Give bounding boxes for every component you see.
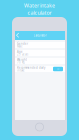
staticText: Male xyxy=(17,45,23,48)
staticText: intake xyxy=(17,69,25,72)
button[interactable]: Back xyxy=(15,31,21,40)
button[interactable]: Age xyxy=(15,50,65,56)
staticText: calculator xyxy=(27,9,51,16)
staticText: Calculator xyxy=(33,34,46,37)
staticText: Age xyxy=(17,50,23,53)
staticText: Recommended daily xyxy=(17,66,45,69)
button[interactable]: Gender xyxy=(15,42,65,48)
staticText: Water intake xyxy=(24,2,55,9)
button[interactable]: Recommended daily xyxy=(15,66,65,72)
staticText: 70 kg xyxy=(17,61,25,64)
button[interactable]: Calc xyxy=(53,67,63,71)
staticText: 25 years xyxy=(17,53,28,56)
staticText: Weight xyxy=(17,58,27,61)
staticText: Calc xyxy=(56,68,59,70)
button[interactable]: Weight xyxy=(15,58,65,64)
staticText: Gender xyxy=(17,42,28,45)
